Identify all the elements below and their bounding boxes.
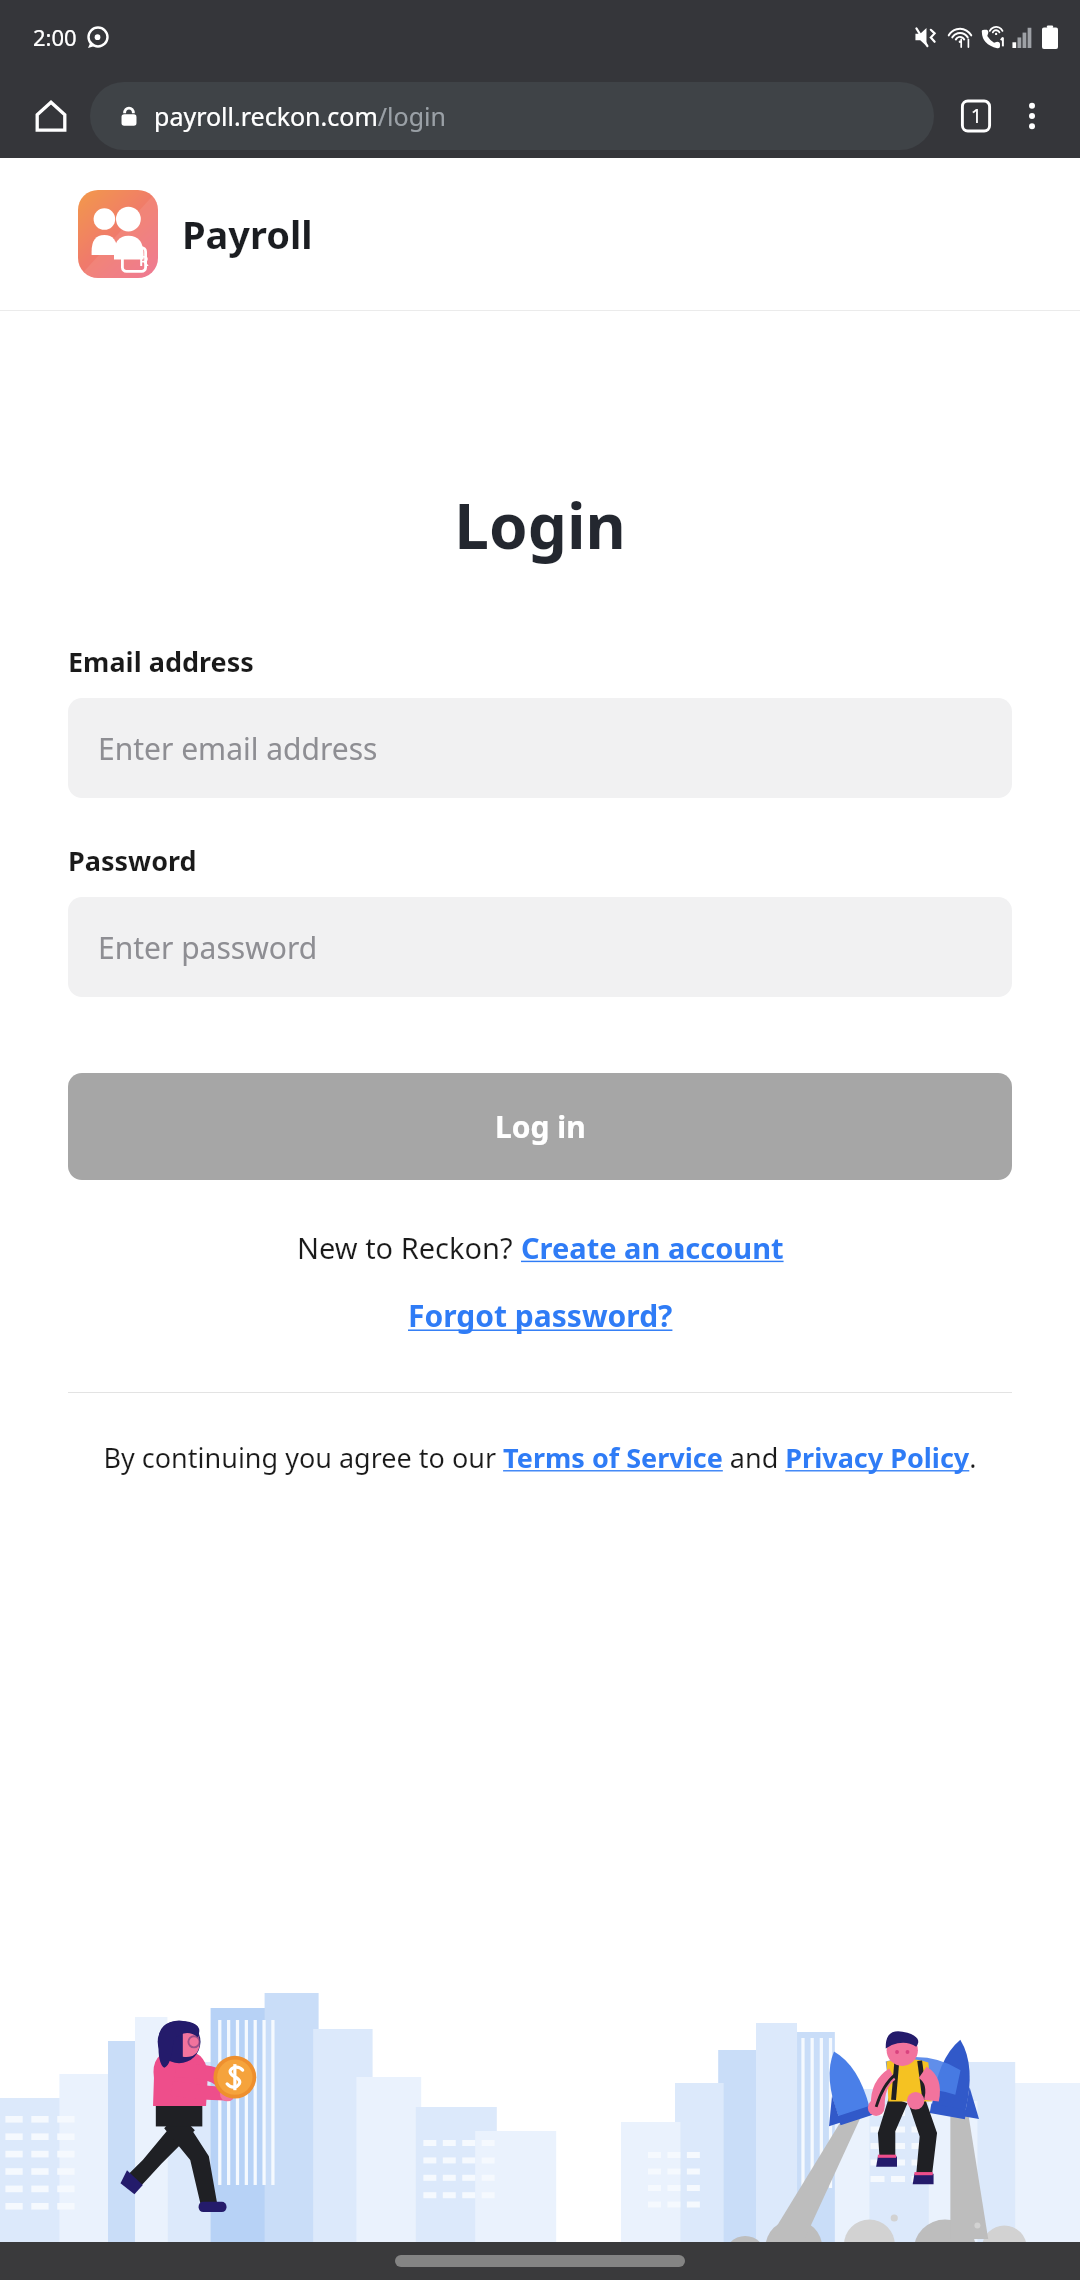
staticText: New to Reckon?	[297, 1228, 521, 1267]
button[interactable]: More options	[1004, 88, 1060, 144]
button[interactable]: Reckon Payroll logo	[78, 190, 158, 278]
staticText: Payroll	[182, 208, 313, 260]
staticText: Password	[68, 842, 197, 879]
button[interactable]: Home	[20, 85, 82, 147]
staticText: Enter email address	[98, 728, 378, 769]
staticText: Login	[68, 483, 1012, 567]
button[interactable]: Tabs	[948, 88, 1004, 144]
staticText: 1	[971, 103, 982, 129]
button[interactable]: Log in	[68, 1073, 1012, 1180]
button[interactable]: Enter email address	[68, 698, 1012, 798]
button[interactable]: Create an account	[521, 1228, 784, 1267]
staticText: By continuing you agree to our Terms of …	[68, 1439, 1012, 1476]
button[interactable]: payroll.reckon.com/login	[90, 82, 934, 150]
staticText: Enter password	[98, 927, 318, 968]
staticText: R	[139, 250, 149, 270]
staticText: Create an account	[521, 1228, 784, 1267]
staticText: 2:00	[33, 22, 77, 52]
staticText: Log in	[495, 1106, 586, 1147]
staticText: Email address	[68, 643, 254, 680]
staticText: payroll.reckon.com/login	[154, 99, 446, 133]
button[interactable]: Home gesture handle	[395, 2255, 685, 2267]
staticText: Forgot password?	[408, 1295, 673, 1336]
button[interactable]: Forgot password?	[408, 1295, 673, 1336]
button[interactable]: Enter password	[68, 897, 1012, 997]
